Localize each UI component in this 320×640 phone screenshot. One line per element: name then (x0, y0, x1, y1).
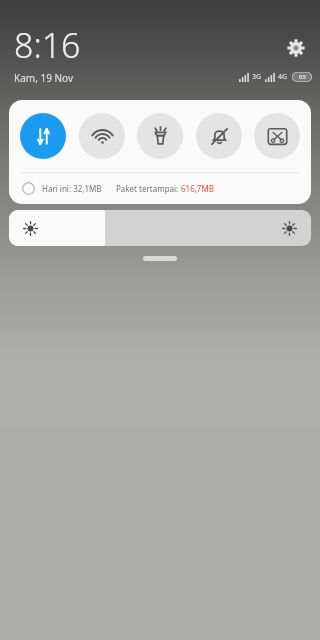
staticText: 3G (252, 72, 262, 82)
staticText: Kam, 19 Nov (14, 71, 73, 85)
button[interactable]: Mobile data (20, 113, 66, 159)
button[interactable]: Flashlight (137, 113, 183, 159)
button[interactable]: Screenshot (254, 113, 300, 159)
staticText: 8:16 (14, 22, 81, 68)
staticText: Paket tertampai: (116, 183, 181, 194)
button[interactable]: Silent (196, 113, 242, 159)
button[interactable]: Wi-Fi (79, 113, 125, 159)
button[interactable]: Hari ini: 32,1MB (9, 173, 311, 204)
staticText: 4G (278, 72, 288, 82)
button[interactable]: Settings (282, 34, 310, 62)
staticText: 616,7MB (181, 183, 214, 194)
button[interactable]: Brightness (9, 210, 311, 246)
staticText: 65 (299, 73, 306, 81)
staticText: Hari ini: 32,1MB (42, 183, 102, 194)
